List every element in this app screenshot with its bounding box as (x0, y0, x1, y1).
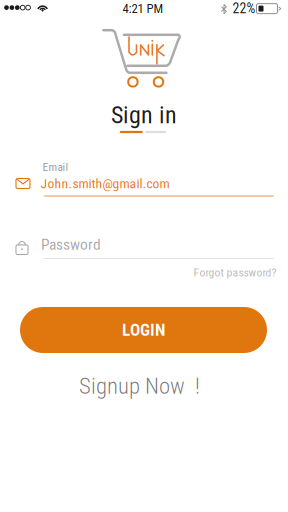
button[interactable]: LOGIN (20, 307, 267, 353)
staticText: Forgot password? (193, 266, 276, 279)
staticText: Signup Now ! (79, 373, 200, 399)
button[interactable]: Signup Now ! (74, 372, 204, 400)
button[interactable]: Forgot password? (193, 264, 277, 280)
staticText: LOGIN (122, 320, 165, 340)
staticText: 22% (232, 0, 255, 17)
staticText: 4:21 PM (122, 1, 163, 16)
staticText: John.smith@gmail.com (40, 175, 169, 191)
staticText: Sign in (111, 101, 177, 129)
staticText: Email (42, 160, 68, 174)
staticText: Password (41, 235, 101, 253)
